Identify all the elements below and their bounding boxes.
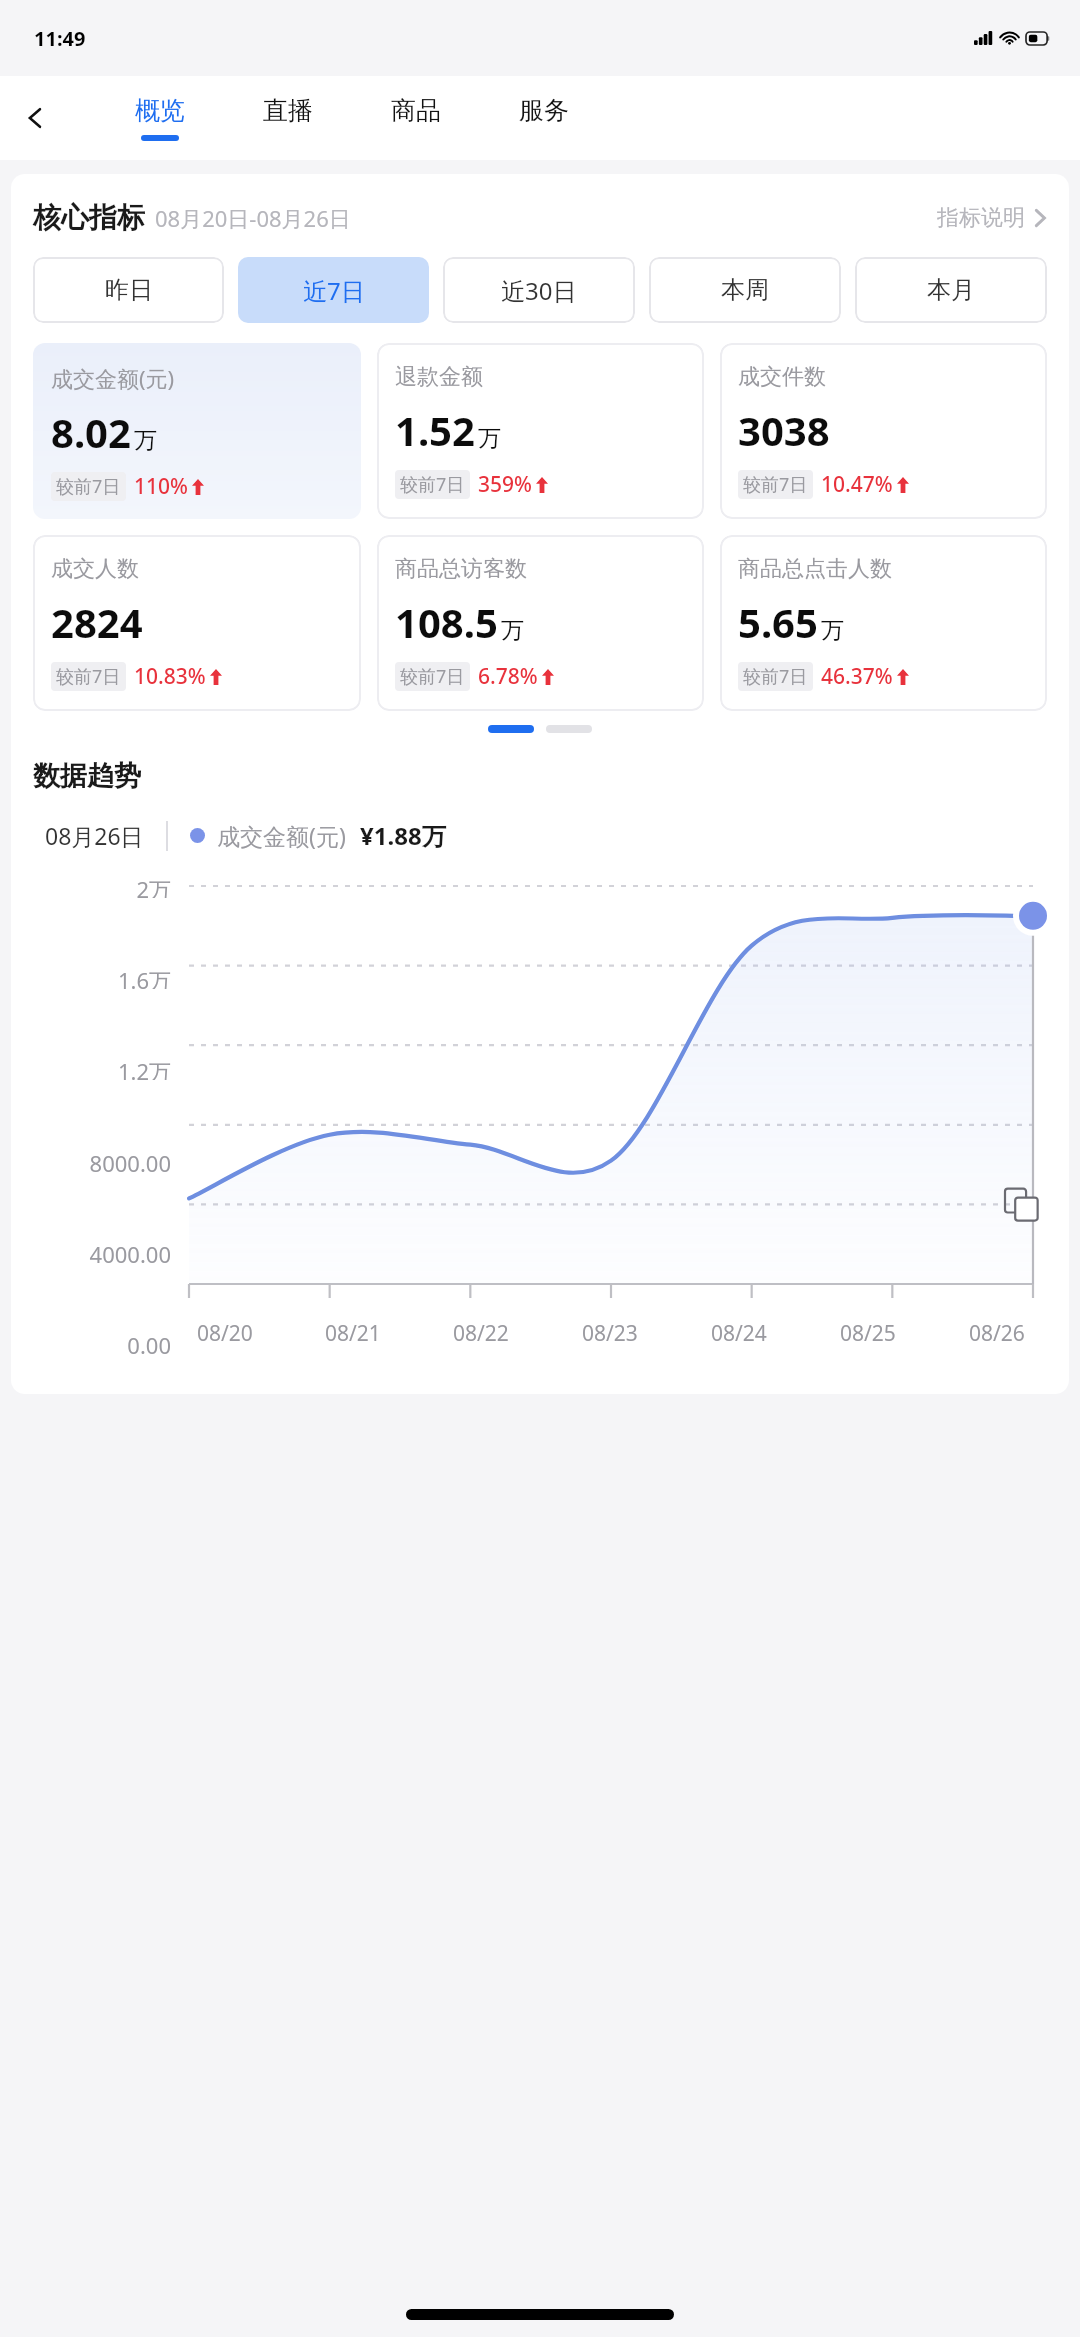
staticText: 核心指标 — [33, 200, 145, 235]
staticText: 3038 — [738, 403, 830, 457]
staticText: 46.37% — [821, 662, 893, 691]
staticText: 08/20 — [197, 1319, 253, 1348]
staticText: 数据趋势 — [33, 759, 141, 793]
staticText: 08/22 — [453, 1319, 509, 1348]
staticText: 商品 — [391, 95, 441, 126]
button[interactable]: 成交金额(元) — [33, 343, 361, 519]
staticText: 较前7日 — [56, 474, 121, 499]
staticText: 较前7日 — [56, 664, 121, 689]
button[interactable]: 本月 — [855, 257, 1047, 323]
staticText: 近7日 — [303, 274, 365, 307]
staticText: ¥1.88万 — [360, 819, 446, 852]
staticText: 近30日 — [501, 274, 577, 307]
staticText: 昨日 — [105, 275, 153, 305]
staticText: 服务 — [519, 95, 569, 126]
staticText: 较前7日 — [400, 472, 465, 497]
staticText: 成交金额(元) — [51, 363, 175, 393]
staticText: 本周 — [721, 275, 769, 305]
button[interactable]: 成交人数 — [33, 535, 361, 711]
staticText: 10.47% — [821, 470, 893, 499]
staticText: 本月 — [927, 275, 975, 305]
staticText: 08/25 — [840, 1319, 896, 1348]
button[interactable]: 直播 — [224, 76, 352, 160]
staticText: 110% — [134, 472, 188, 501]
button[interactable]: 近30日 — [443, 257, 635, 323]
staticText: 1.2万 — [117, 1056, 171, 1080]
staticText: 商品总访客数 — [395, 555, 527, 583]
button[interactable]: 商品总点击人数 — [720, 535, 1047, 711]
staticText: 较前7日 — [400, 664, 465, 689]
staticText: 08/23 — [582, 1319, 638, 1348]
staticText: 10.83% — [134, 662, 206, 691]
staticText: 万 — [134, 426, 157, 455]
button[interactable]: 商品 — [352, 76, 480, 160]
staticText: 商品总点击人数 — [738, 555, 892, 583]
staticText: 2824 — [51, 595, 143, 649]
staticText: 08/24 — [711, 1319, 767, 1348]
button[interactable]: 本周 — [649, 257, 841, 323]
staticText: 8000.00 — [89, 1148, 171, 1172]
staticText: 4000.00 — [89, 1239, 171, 1263]
staticText: 万 — [478, 424, 501, 453]
button[interactable]: 近7日 — [238, 257, 429, 323]
staticText: 08/26 — [969, 1319, 1025, 1348]
button[interactable]: Copy — [1001, 1184, 1043, 1226]
staticText: 概览 — [135, 95, 185, 126]
button[interactable]: 服务 — [480, 76, 608, 160]
staticText: 退款金额 — [395, 363, 483, 391]
button[interactable]: Back — [0, 76, 72, 160]
button[interactable]: 昨日 — [33, 257, 224, 323]
staticText: 08月26日 — [45, 820, 144, 851]
staticText: 2万 — [136, 874, 171, 898]
staticText: 1.52 — [395, 403, 475, 457]
staticText: 08/21 — [325, 1319, 381, 1348]
staticText: 0.00 — [127, 1330, 171, 1354]
staticText: 成交金额(元) — [217, 820, 346, 851]
staticText: 359% — [478, 470, 532, 499]
staticText: 较前7日 — [743, 664, 808, 689]
button[interactable]: 退款金额 — [377, 343, 704, 519]
staticText: 万 — [501, 616, 524, 645]
staticText: 成交人数 — [51, 555, 139, 583]
button[interactable]: 成交件数 — [720, 343, 1047, 519]
staticText: 08月20日-08月26日 — [155, 203, 351, 233]
button[interactable]: 指标说明 — [937, 204, 1047, 232]
staticText: 较前7日 — [743, 472, 808, 497]
staticText: 6.78% — [478, 662, 538, 691]
staticText: 1.6万 — [117, 965, 171, 989]
staticText: 成交件数 — [738, 363, 826, 391]
staticText: 万 — [821, 616, 844, 645]
staticText: 指标说明 — [937, 204, 1025, 232]
staticText: 11:49 — [34, 25, 86, 52]
staticText: 108.5 — [395, 595, 498, 649]
staticText: 5.65 — [738, 595, 818, 649]
button[interactable]: 商品总访客数 — [377, 535, 704, 711]
staticText: 8.02 — [51, 405, 131, 459]
button[interactable]: 概览 — [96, 76, 224, 160]
staticText: 直播 — [263, 95, 313, 126]
